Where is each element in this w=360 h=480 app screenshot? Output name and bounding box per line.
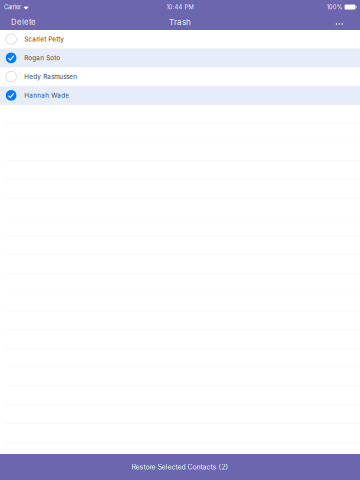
button[interactable]: Rogan Soto bbox=[0, 49, 360, 68]
button[interactable]: Scarlet Petty bbox=[0, 30, 360, 49]
button[interactable]: Delete bbox=[0, 14, 47, 30]
staticText: 100% bbox=[327, 3, 343, 11]
staticText: Hedy Rasmussen bbox=[24, 73, 77, 80]
staticText: Hannah Wade bbox=[24, 92, 69, 99]
staticText: Trash bbox=[169, 17, 191, 27]
button[interactable]: Hannah Wade bbox=[0, 86, 360, 105]
staticText: Scarlet Petty bbox=[24, 35, 64, 43]
staticText: Restore Selected Contacts (2) bbox=[131, 463, 228, 471]
button[interactable]: Hedy Rasmussen bbox=[0, 67, 360, 86]
staticText: 10:44 PM bbox=[166, 3, 193, 11]
staticText: Rogan Soto bbox=[24, 54, 60, 62]
staticText: Carrier bbox=[4, 3, 21, 11]
button[interactable]: Restore Selected Contacts (2) bbox=[0, 454, 360, 480]
button[interactable]: More options bbox=[326, 16, 360, 28]
staticText: Delete bbox=[11, 17, 36, 27]
